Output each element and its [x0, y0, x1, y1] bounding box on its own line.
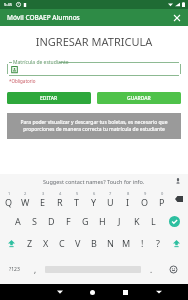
button[interactable]: 3	[34, 188, 51, 210]
button[interactable]: ?123	[1, 254, 27, 284]
staticText: C	[59, 237, 65, 249]
button[interactable]: M	[118, 232, 134, 254]
button[interactable]: F	[60, 210, 77, 232]
staticText: I	[126, 196, 130, 208]
button[interactable]: A	[9, 210, 26, 232]
button[interactable]: Recents	[109, 284, 142, 300]
staticText: G	[82, 215, 89, 227]
button[interactable]: Shift	[166, 232, 187, 254]
staticText: P	[159, 196, 165, 208]
staticText: J	[118, 215, 121, 227]
staticText: 5:45	[4, 2, 12, 7]
button[interactable]: H	[94, 210, 111, 232]
staticText: N	[107, 237, 114, 249]
staticText: E	[40, 196, 46, 208]
button[interactable]: Back	[43, 284, 76, 300]
button[interactable]: V	[70, 232, 86, 254]
staticText: X	[43, 237, 49, 249]
button[interactable]: D	[43, 210, 60, 232]
button[interactable]	[7, 62, 181, 76]
staticText: 1	[8, 191, 11, 196]
button[interactable]: 4	[51, 188, 68, 210]
button[interactable]: K	[128, 210, 145, 232]
staticText: F	[66, 215, 71, 227]
staticText: INGRESAR MATRICULA	[0, 34, 188, 49]
staticText: Para poder visualizar y descargar tus bo…	[13, 119, 175, 133]
staticText: K	[134, 215, 140, 227]
button[interactable]: 8	[119, 188, 136, 210]
staticText: B	[91, 237, 97, 249]
staticText: *Obligatorio	[9, 78, 36, 84]
button[interactable]: Home	[76, 284, 109, 300]
button[interactable]: J	[111, 210, 128, 232]
button[interactable]: 5	[68, 188, 85, 210]
staticText: 9	[144, 191, 147, 196]
button[interactable]: !	[134, 232, 150, 254]
staticText: O	[141, 196, 149, 208]
staticText: EDITAR	[40, 95, 58, 102]
staticText: V	[75, 237, 81, 249]
staticText: Móvil COBAEP Alumnos	[7, 13, 80, 22]
staticText: 6	[93, 191, 96, 196]
button[interactable]: Emoji	[160, 254, 187, 284]
staticText: Y	[91, 196, 97, 208]
staticText: 2	[24, 191, 27, 196]
staticText: 0	[161, 191, 164, 196]
staticText: W	[21, 196, 30, 208]
staticText: Suggest contact names? Touch for info.	[43, 178, 145, 185]
staticText: T	[74, 196, 80, 208]
staticText: D	[48, 215, 55, 227]
staticText: L	[151, 215, 156, 227]
button[interactable]: 6	[85, 188, 102, 210]
button[interactable]: 9	[136, 188, 153, 210]
button[interactable]: Hide keyboard	[142, 284, 175, 300]
button[interactable]: 0	[153, 188, 170, 210]
button[interactable]: ,	[27, 254, 43, 284]
staticText: S	[32, 215, 37, 227]
button[interactable]: ?	[150, 232, 166, 254]
staticText: U	[107, 196, 114, 208]
button[interactable]: 7	[102, 188, 119, 210]
button[interactable]: EDITAR	[7, 92, 91, 104]
button[interactable]: Z	[22, 232, 38, 254]
staticText: M	[122, 237, 131, 249]
button[interactable]: Close	[171, 12, 183, 24]
button[interactable]: .	[143, 254, 160, 284]
staticText: Matrícula de estudiante	[13, 59, 69, 66]
staticText: 4	[59, 191, 62, 196]
button[interactable]: Enter	[162, 210, 187, 232]
button[interactable]: G	[77, 210, 94, 232]
button[interactable]: Voice input	[173, 176, 183, 186]
button[interactable]: Shift	[1, 232, 22, 254]
button[interactable]: 1	[1, 188, 17, 210]
button[interactable]: L	[145, 210, 162, 232]
button[interactable]: GUARDAR	[97, 92, 181, 104]
staticText: R	[57, 196, 63, 208]
staticText: 5	[76, 191, 79, 196]
button[interactable]: Backspace	[170, 188, 187, 210]
staticText: A	[15, 215, 21, 227]
button[interactable]: N	[102, 232, 118, 254]
staticText: ,	[34, 264, 37, 275]
staticText: ?123	[9, 266, 20, 273]
button[interactable]: C	[54, 232, 70, 254]
button[interactable]: S	[26, 210, 43, 232]
staticText: .	[150, 264, 153, 275]
button[interactable]: X	[38, 232, 54, 254]
staticText: ?	[156, 237, 160, 249]
staticText: H	[99, 215, 106, 227]
staticText: 8	[127, 191, 130, 196]
button[interactable]: B	[86, 232, 102, 254]
button[interactable]: 2	[17, 188, 34, 210]
staticText: Z	[27, 237, 33, 249]
staticText: !	[141, 237, 144, 249]
staticText: GUARDAR	[127, 95, 151, 102]
staticText: 3	[42, 191, 45, 196]
staticText: 7	[109, 191, 112, 196]
staticText: Q	[5, 196, 13, 208]
